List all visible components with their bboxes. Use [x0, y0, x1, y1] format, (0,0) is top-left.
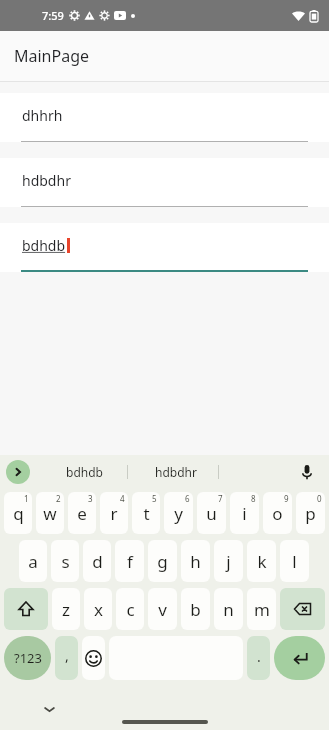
button[interactable]: r [100, 492, 128, 534]
button[interactable]: , [55, 636, 78, 680]
staticText: u [206, 502, 217, 525]
button[interactable]: d [83, 540, 111, 582]
staticText: 7 [218, 493, 223, 504]
staticText: r [110, 502, 118, 525]
button[interactable]: More suggestions [6, 460, 30, 484]
button[interactable]: Enter [274, 636, 325, 680]
button[interactable]: q [4, 492, 32, 534]
button[interactable]: t [132, 492, 160, 534]
button[interactable]: i [230, 492, 259, 534]
staticText: t [143, 502, 150, 525]
button[interactable]: bdhdb [42, 455, 127, 489]
staticText: k [257, 550, 267, 573]
button[interactable]: a [19, 540, 47, 582]
staticText: bdhdb [66, 464, 103, 480]
button[interactable]: n [214, 588, 243, 630]
staticText: d [92, 550, 103, 573]
button[interactable]: f [115, 540, 144, 582]
staticText: . [257, 647, 261, 666]
staticText: g [157, 550, 168, 573]
staticText: 8 [251, 493, 256, 504]
button[interactable]: o [263, 492, 292, 534]
staticText: c [126, 598, 135, 621]
staticText: h [190, 550, 201, 573]
button[interactable]: hdbdhr [0, 158, 329, 207]
button[interactable]: hdbdhr [133, 455, 218, 489]
button[interactable]: b [181, 588, 210, 630]
staticText: w [43, 502, 57, 525]
button[interactable]: u [197, 492, 226, 534]
staticText: o [272, 502, 283, 525]
button[interactable]: x [84, 588, 112, 630]
staticText: q [13, 502, 24, 525]
button[interactable]: e [68, 492, 96, 534]
staticText: 3 [88, 493, 93, 504]
button[interactable]: z [52, 588, 80, 630]
staticText: 2 [56, 493, 61, 504]
button[interactable]: k [247, 540, 276, 582]
button[interactable]: p [296, 492, 325, 534]
button[interactable]: h [181, 540, 210, 582]
button[interactable]: s [51, 540, 79, 582]
staticText: j [226, 550, 231, 573]
staticText: b [190, 598, 201, 621]
staticText: 6 [185, 493, 190, 504]
staticText: 0 [317, 493, 322, 504]
staticText: s [61, 550, 70, 573]
staticText: f [127, 550, 133, 573]
staticText: hdbdhr [155, 464, 197, 480]
staticText: bdhdb [22, 236, 66, 255]
staticText: m [254, 598, 270, 621]
button[interactable]: Delete [280, 588, 325, 630]
staticText: ?123 [14, 649, 42, 667]
staticText: e [77, 502, 87, 525]
staticText: 5 [152, 493, 157, 504]
staticText: i [242, 502, 247, 525]
staticText: 1 [24, 493, 29, 504]
staticText: 4 [120, 493, 125, 504]
button[interactable]: Voice input [293, 458, 321, 486]
button[interactable]: . [247, 636, 270, 680]
button[interactable]: l [280, 540, 309, 582]
staticText: hdbdhr [22, 171, 71, 190]
staticText: x [94, 598, 103, 621]
button[interactable]: ?123 [4, 636, 51, 680]
staticText: MainPage [14, 45, 90, 67]
button[interactable]: m [247, 588, 276, 630]
button[interactable]: Shift [4, 588, 48, 630]
button[interactable]: v [148, 588, 177, 630]
staticText: p [305, 502, 316, 525]
staticText: 9 [284, 493, 289, 504]
staticText: l [292, 550, 297, 573]
staticText: dhhrh [22, 106, 63, 125]
button[interactable]: y [164, 492, 193, 534]
button[interactable]: bdhdb [0, 223, 329, 272]
staticText: z [62, 598, 70, 621]
button[interactable]: w [36, 492, 64, 534]
staticText: y [174, 502, 183, 525]
staticText: , [65, 646, 69, 665]
staticText: n [223, 598, 234, 621]
button[interactable]: j [214, 540, 243, 582]
staticText: v [158, 598, 167, 621]
button[interactable]: g [148, 540, 177, 582]
staticText: 7:59 [42, 8, 64, 23]
button[interactable]: Hide keyboard [38, 698, 60, 720]
button[interactable]: dhhrh [0, 93, 329, 142]
button[interactable]: Emoji [82, 636, 105, 680]
button[interactable]: c [116, 588, 144, 630]
staticText: a [28, 550, 38, 573]
